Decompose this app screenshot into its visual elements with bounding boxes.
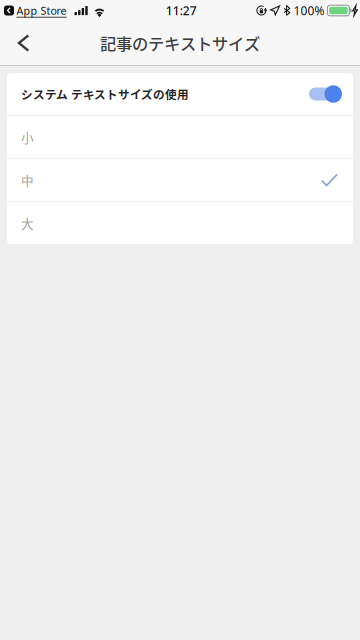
staticText: App Store (16, 3, 66, 18)
button[interactable]: システム テキストサイズの使用 (7, 73, 353, 115)
button[interactable]: 大 (7, 202, 353, 244)
staticText: 記事のテキストサイズ (100, 31, 260, 55)
staticText: 大 (21, 214, 34, 232)
button[interactable]: 中 (7, 159, 353, 201)
button[interactable]: 小 (7, 116, 353, 158)
button[interactable]: Back (0, 22, 42, 64)
staticText: 100% (293, 2, 324, 18)
staticText: 中 (21, 171, 34, 189)
button[interactable]: Back to App Store (4, 3, 66, 18)
staticText: システム テキストサイズの使用 (21, 86, 189, 102)
staticText: 小 (21, 128, 34, 146)
staticText: 11:27 (166, 2, 197, 18)
